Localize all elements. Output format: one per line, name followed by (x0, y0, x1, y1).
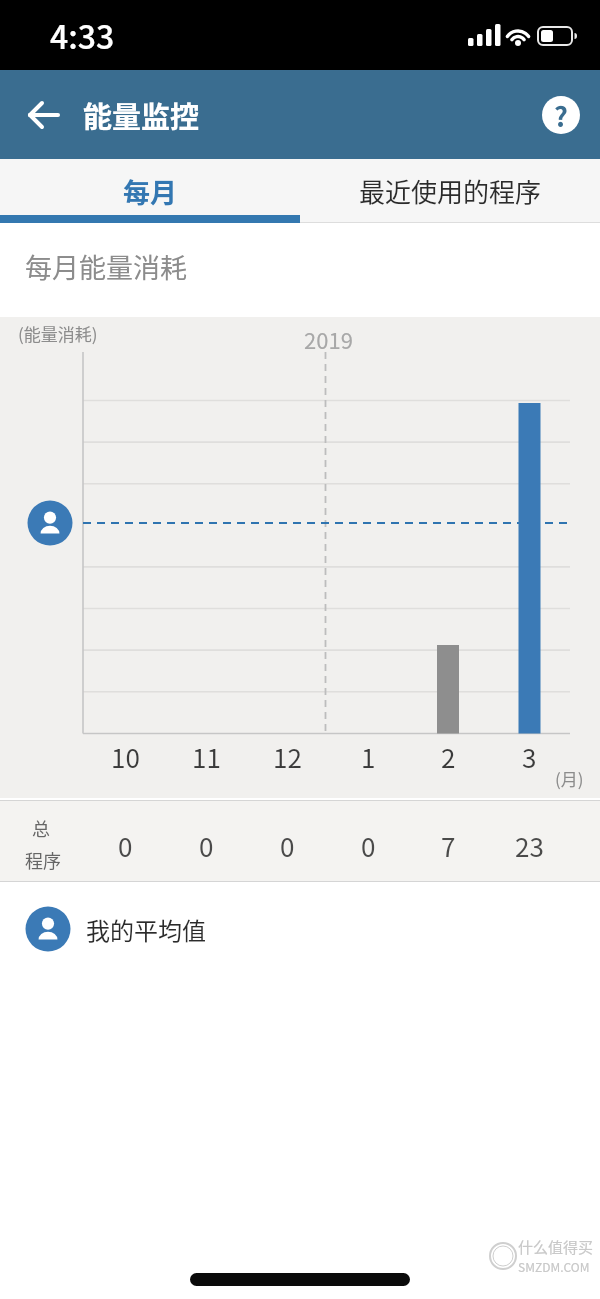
staticText: 23 (515, 827, 544, 863)
staticText: 11 (192, 738, 221, 774)
button[interactable]: 我的平均值 (0, 904, 600, 954)
staticText: 10 (111, 738, 140, 774)
staticText: (能量消耗) (18, 321, 98, 346)
staticText: (月) (555, 766, 584, 791)
staticText: ? (554, 96, 568, 134)
staticText: 0 (280, 827, 295, 863)
staticText: 最近使用的程序 (359, 172, 542, 210)
staticText: 什么值得买 (518, 1236, 594, 1258)
staticText: 0 (361, 827, 376, 863)
button[interactable] (14, 94, 74, 136)
staticText: 1 (361, 738, 376, 774)
staticText: 每月 (123, 172, 177, 211)
staticText: 每月能量消耗 (25, 247, 187, 286)
staticText: 2019 (304, 323, 353, 351)
staticText: 12 (273, 738, 302, 774)
staticText: 2 (441, 738, 456, 774)
staticText: 能量监控 (83, 94, 200, 136)
staticText: 3 (522, 738, 537, 774)
staticText: 7 (441, 827, 456, 863)
button[interactable]: ? (542, 96, 580, 134)
button[interactable]: 最近使用的程序 (300, 159, 600, 223)
staticText: 0 (199, 827, 214, 863)
staticText: 我的平均值 (86, 912, 206, 947)
staticText: 4:33 (50, 12, 115, 58)
staticText: 0 (118, 827, 133, 863)
staticText: 总 (32, 815, 50, 841)
staticText: 程序 (25, 847, 61, 873)
button[interactable]: 每月 (0, 159, 300, 223)
staticText: SMZDM.COM (518, 1258, 590, 1275)
